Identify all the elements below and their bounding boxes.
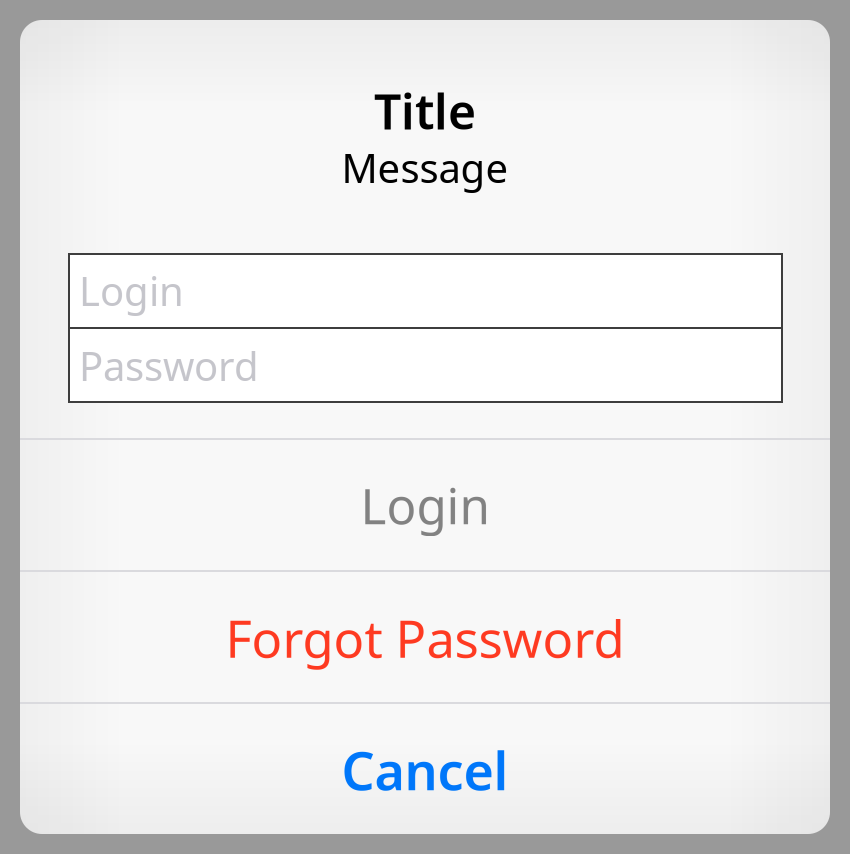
button[interactable]: Password	[69, 329, 782, 402]
staticText: Login	[79, 264, 184, 317]
staticText: Login	[360, 472, 489, 538]
staticText: Title	[374, 79, 476, 143]
button[interactable]: Cancel	[20, 702, 830, 834]
staticText: Cancel	[341, 735, 508, 805]
staticText: Forgot Password	[225, 604, 624, 672]
staticText: Message	[341, 141, 508, 194]
staticText: Password	[79, 339, 259, 392]
button[interactable]: Forgot Password	[20, 570, 830, 702]
button[interactable]: Login	[20, 438, 830, 570]
button[interactable]: Login	[69, 254, 782, 327]
